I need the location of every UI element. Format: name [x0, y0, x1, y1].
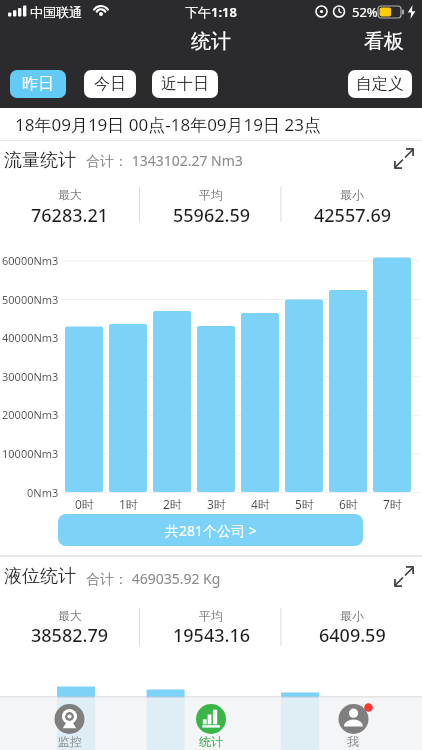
staticText: 统计 — [199, 734, 223, 749]
button[interactable]: 自定义 — [348, 70, 412, 98]
staticText: 20000Nm3 — [2, 407, 59, 422]
staticText: 55962.59 — [173, 203, 250, 227]
staticText: 6409.59 — [319, 623, 386, 647]
staticText: 60000Nm3 — [2, 253, 59, 268]
button[interactable]: 今日 — [84, 70, 136, 98]
staticText: 10000Nm3 — [2, 446, 59, 461]
staticText: 流量统计 — [4, 149, 76, 172]
button[interactable] — [388, 142, 420, 174]
staticText: 液位统计 — [4, 565, 76, 588]
button[interactable] — [155, 698, 267, 750]
staticText: 最大 — [58, 608, 82, 623]
staticText: 平均 — [199, 608, 223, 623]
button[interactable]: 看板 — [354, 27, 414, 55]
staticText: 3时 — [207, 496, 226, 510]
staticText: 38582.79 — [31, 623, 108, 647]
staticText: 看板 — [364, 29, 404, 54]
staticText: 30000Nm3 — [2, 369, 59, 384]
staticText: 18年09月19日 00点-18年09月19日 23点 — [15, 113, 321, 136]
button[interactable] — [297, 698, 409, 750]
staticText: 下午1:18 — [185, 3, 237, 21]
staticText: 5时 — [295, 496, 314, 510]
staticText: 50000Nm3 — [2, 292, 59, 307]
staticText: 昨日 — [22, 74, 54, 94]
staticText: 今日 — [94, 74, 126, 94]
staticText: 52% — [352, 3, 378, 21]
staticText: 19543.16 — [173, 623, 250, 647]
button[interactable] — [388, 560, 420, 592]
staticText: 共281个公司 > — [165, 521, 257, 540]
staticText: 6时 — [339, 496, 358, 510]
staticText: 40000Nm3 — [2, 330, 59, 345]
staticText: 中国联通 — [30, 4, 82, 20]
staticText: 7时 — [383, 496, 402, 510]
staticText: 合计： 469035.92 Kg — [86, 569, 221, 588]
staticText: 2时 — [163, 496, 182, 510]
staticText: 监控 — [58, 734, 82, 749]
staticText: 76283.21 — [31, 203, 108, 227]
staticText: 4时 — [251, 496, 270, 510]
staticText: 合计： 1343102.27 Nm3 — [86, 151, 243, 170]
staticText: 0时 — [75, 496, 94, 510]
button[interactable] — [14, 698, 126, 750]
staticText: 自定义 — [356, 74, 404, 94]
staticText: 统计 — [191, 29, 231, 54]
staticText: 1时 — [119, 496, 138, 510]
staticText: 近十日 — [161, 74, 209, 94]
button[interactable]: 近十日 — [152, 70, 218, 98]
staticText: 我 — [347, 734, 359, 749]
staticText: 最小 — [340, 608, 364, 623]
staticText: 平均 — [199, 187, 223, 202]
staticText: 最小 — [340, 187, 364, 202]
button[interactable]: 昨日 — [10, 70, 66, 98]
staticText: 0Nm3 — [27, 485, 59, 500]
button[interactable]: 共281个公司 > — [58, 514, 363, 546]
staticText: 42557.69 — [314, 203, 391, 227]
staticText: 最大 — [58, 187, 82, 202]
